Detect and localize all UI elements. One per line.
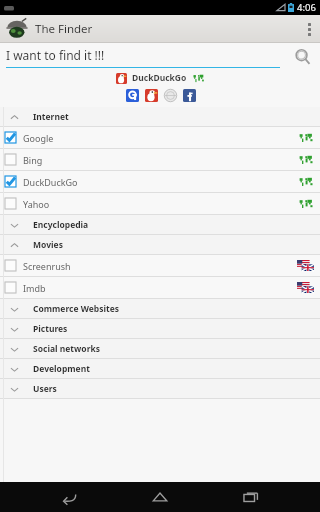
button[interactable]: Development <box>0 359 320 378</box>
button[interactable]: Recent apps <box>229 482 273 512</box>
button[interactable]: Yahoo <box>0 193 320 214</box>
staticText: Users <box>33 383 57 395</box>
button[interactable]: Pictures <box>0 319 320 338</box>
staticText: I want to find it !!! <box>6 47 105 63</box>
button[interactable]: Facebook <box>182 88 196 102</box>
staticText: Pictures <box>33 323 68 335</box>
button[interactable]: Encyclopedia <box>0 215 320 234</box>
staticText: The Finder <box>35 21 93 37</box>
button[interactable]: Screenrush <box>0 255 320 276</box>
button[interactable]: Social networks <box>0 339 320 358</box>
staticText: Encyclopedia <box>33 219 89 231</box>
button[interactable]: Wikipedia <box>163 88 177 102</box>
button[interactable]: Commerce Websites <box>0 299 320 318</box>
staticText: Movies <box>33 239 63 251</box>
button[interactable]: Up <box>4 16 30 42</box>
button[interactable]: DuckDuckGo <box>0 171 320 192</box>
staticText: Screenrush <box>23 260 71 272</box>
button[interactable]: Google <box>125 88 139 102</box>
staticText: Development <box>33 363 90 375</box>
button[interactable]: Search <box>290 44 316 70</box>
staticText: 4:06 <box>297 1 316 14</box>
staticText: Internet <box>33 111 69 123</box>
button[interactable]: Imdb <box>0 277 320 298</box>
staticText: Google <box>23 132 54 144</box>
button[interactable]: Google <box>0 127 320 148</box>
staticText: Yahoo <box>23 198 50 210</box>
button[interactable]: Back <box>47 482 91 512</box>
button[interactable]: Users <box>0 379 320 398</box>
staticText: Social networks <box>33 343 100 355</box>
staticText: Imdb <box>23 282 46 294</box>
staticText: Bing <box>23 154 43 166</box>
button[interactable]: Home <box>138 482 182 512</box>
staticText: DuckDuckGo <box>132 72 187 84</box>
button[interactable]: Movies <box>0 235 320 254</box>
staticText: DuckDuckGo <box>23 176 78 188</box>
button[interactable]: Bing <box>0 149 320 170</box>
staticText: Commerce Websites <box>33 303 120 315</box>
button[interactable]: More options <box>298 15 320 43</box>
button[interactable]: DuckDuckGo <box>144 88 158 102</box>
button[interactable]: Internet <box>0 107 320 126</box>
